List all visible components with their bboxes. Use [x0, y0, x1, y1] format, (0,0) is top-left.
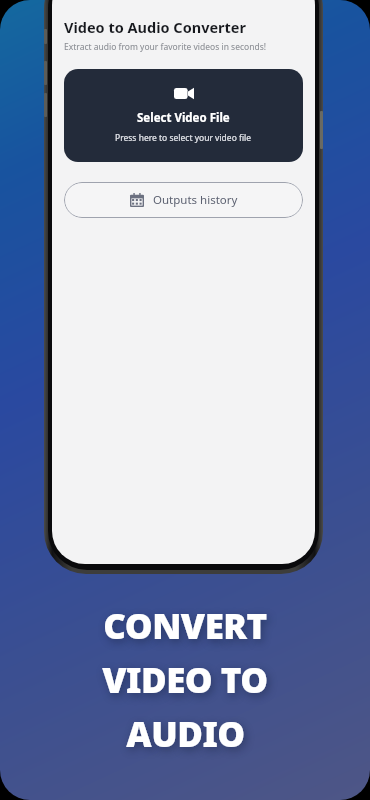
staticText: VIDEO TO — [102, 656, 268, 704]
button[interactable]: Select video file — [64, 69, 303, 162]
staticText: Extract audio from your favorite videos … — [64, 41, 267, 53]
staticText: AUDIO — [126, 710, 245, 758]
staticText: Select Video File — [137, 110, 230, 126]
staticText: CONVERT — [103, 602, 267, 650]
button[interactable]: Outputs history — [64, 182, 303, 218]
staticText: Press here to select your video file — [115, 132, 252, 144]
other: Outputs history — [130, 193, 144, 207]
staticText: Outputs history — [153, 192, 238, 208]
other: Select video file — [174, 87, 194, 100]
staticText: Video to Audio Converter — [64, 17, 246, 37]
